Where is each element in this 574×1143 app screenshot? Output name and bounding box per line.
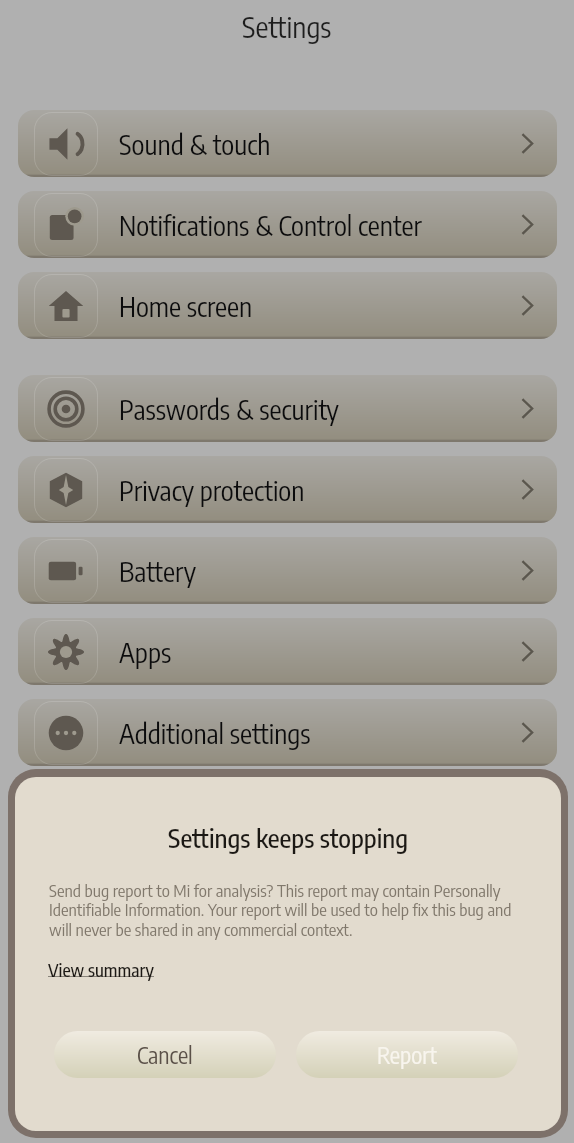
staticText: Additional settings <box>119 716 311 750</box>
staticText: Sound & touch <box>119 127 271 161</box>
staticText: Settings keeps stopping <box>15 821 561 853</box>
button[interactable]: Home screen <box>18 272 557 339</box>
staticText: View summary <box>48 958 155 980</box>
staticText: Notifications & Control center <box>119 208 422 242</box>
button[interactable]: Report <box>296 1031 518 1078</box>
staticText: Cancel <box>137 1040 193 1069</box>
button[interactable]: Battery <box>18 537 557 604</box>
button[interactable]: View summary <box>48 958 155 980</box>
button[interactable]: Passwords & security <box>18 375 557 442</box>
button[interactable]: Sound & touch <box>18 110 557 177</box>
staticText: Apps <box>119 635 172 669</box>
button[interactable]: Privacy protection <box>18 456 557 523</box>
button[interactable]: Cancel <box>54 1031 276 1078</box>
staticText: Home screen <box>119 289 253 323</box>
staticText: Settings <box>242 8 332 44</box>
staticText: Passwords & security <box>119 392 339 426</box>
button[interactable]: Apps <box>18 618 557 685</box>
staticText: Battery <box>119 554 197 588</box>
staticText: Report <box>377 1040 437 1069</box>
button[interactable]: Notifications & Control center <box>18 191 557 258</box>
staticText: Send bug report to Mi for analysis? This… <box>49 879 528 940</box>
staticText: Privacy protection <box>119 473 305 507</box>
button[interactable]: Additional settings <box>18 699 557 766</box>
